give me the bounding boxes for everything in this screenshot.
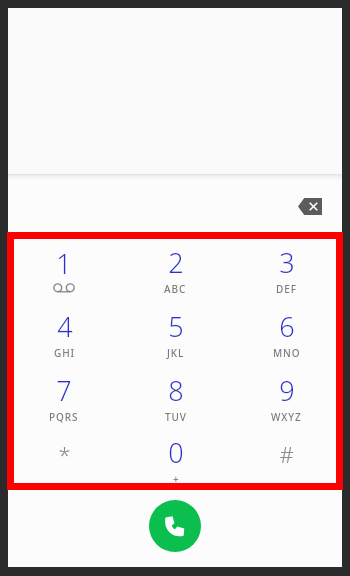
staticText: WXYZ [271, 410, 302, 424]
staticText: JKL [167, 346, 185, 360]
staticText: 5 [168, 308, 184, 345]
staticText: 8 [168, 372, 184, 409]
staticText: 3 [279, 244, 295, 281]
button[interactable]: 0 [120, 430, 231, 490]
button[interactable]: 1 [8, 238, 120, 302]
button[interactable]: * [8, 430, 120, 490]
button[interactable]: 8 [120, 366, 231, 430]
button[interactable]: 7 [8, 366, 120, 430]
staticText: DEF [276, 282, 297, 296]
staticText: 6 [279, 308, 295, 345]
button[interactable]: 3 [231, 238, 342, 302]
button[interactable]: 5 [120, 302, 231, 366]
staticText: 7 [56, 372, 72, 409]
button[interactable]: 4 [8, 302, 120, 366]
staticText: 4 [57, 308, 73, 345]
button[interactable]: Backspace [290, 186, 330, 226]
staticText: # [279, 439, 294, 469]
staticText: MNO [273, 346, 301, 360]
button[interactable]: 9 [231, 366, 342, 430]
staticText: 2 [168, 244, 184, 281]
button[interactable]: 6 [231, 302, 342, 366]
staticText: ABC [164, 282, 187, 296]
staticText: GHI [54, 346, 75, 360]
staticText: 9 [279, 372, 295, 409]
staticText: TUV [165, 410, 187, 424]
button[interactable]: 2 [120, 238, 231, 302]
button[interactable]: # [231, 430, 342, 490]
staticText: 0 [168, 434, 184, 471]
staticText: PQRS [49, 410, 79, 424]
staticText: + [173, 472, 179, 486]
staticText: * [58, 439, 71, 469]
staticText: 1 [56, 245, 72, 282]
button[interactable]: Call [149, 500, 201, 552]
